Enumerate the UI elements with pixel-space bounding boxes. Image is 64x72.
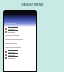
button[interactable] xyxy=(5,53,35,56)
button[interactable] xyxy=(5,27,35,30)
button[interactable] xyxy=(5,56,35,59)
staticText: Following xyxy=(5,21,17,24)
button[interactable] xyxy=(5,50,35,53)
staticText: DESIGN TREND xyxy=(21,3,44,7)
button[interactable] xyxy=(5,30,35,33)
